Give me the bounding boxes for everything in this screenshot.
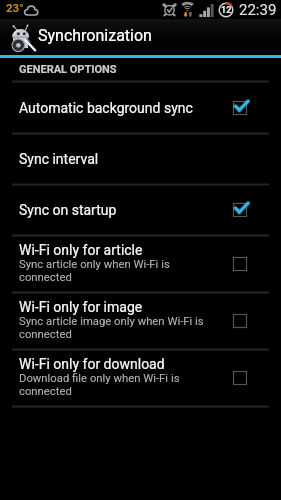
staticText: Wi-Fi only for image <box>19 299 143 315</box>
staticText: 22:39 <box>239 1 277 19</box>
staticText: Automatic background sync <box>19 100 193 116</box>
staticText: Download file only when Wi-Fi is connect… <box>19 372 209 398</box>
button[interactable]: Checked <box>227 197 253 223</box>
staticText: Synchronization <box>38 26 152 45</box>
button[interactable]: Unchecked <box>227 365 253 391</box>
staticText: GENERAL OPTIONS <box>19 63 117 76</box>
button[interactable]: Sync on startup <box>0 185 281 236</box>
button[interactable]: Sync interval <box>0 134 281 185</box>
button[interactable]: Unchecked <box>227 251 253 277</box>
button[interactable]: Unchecked <box>227 308 253 334</box>
staticText: 12 <box>221 5 232 16</box>
staticText: Wi-Fi only for download <box>19 356 165 372</box>
button[interactable]: Automatic background sync <box>0 82 281 134</box>
button[interactable]: Wi-Fi only for download <box>0 350 281 407</box>
other: App icon <box>8 24 36 52</box>
staticText: Sync interval <box>19 151 99 167</box>
staticText: Sync article image only when Wi-Fi is co… <box>19 315 209 341</box>
button[interactable]: App icon <box>0 19 281 55</box>
staticText: Sync article only when Wi-Fi is connecte… <box>19 258 209 284</box>
staticText: 23° <box>6 1 24 14</box>
button[interactable]: Checked <box>227 95 253 121</box>
button[interactable]: Wi-Fi only for image <box>0 293 281 350</box>
staticText: Sync on startup <box>19 202 117 218</box>
button[interactable]: Wi-Fi only for article <box>0 236 281 293</box>
staticText: Wi-Fi only for article <box>19 242 143 258</box>
